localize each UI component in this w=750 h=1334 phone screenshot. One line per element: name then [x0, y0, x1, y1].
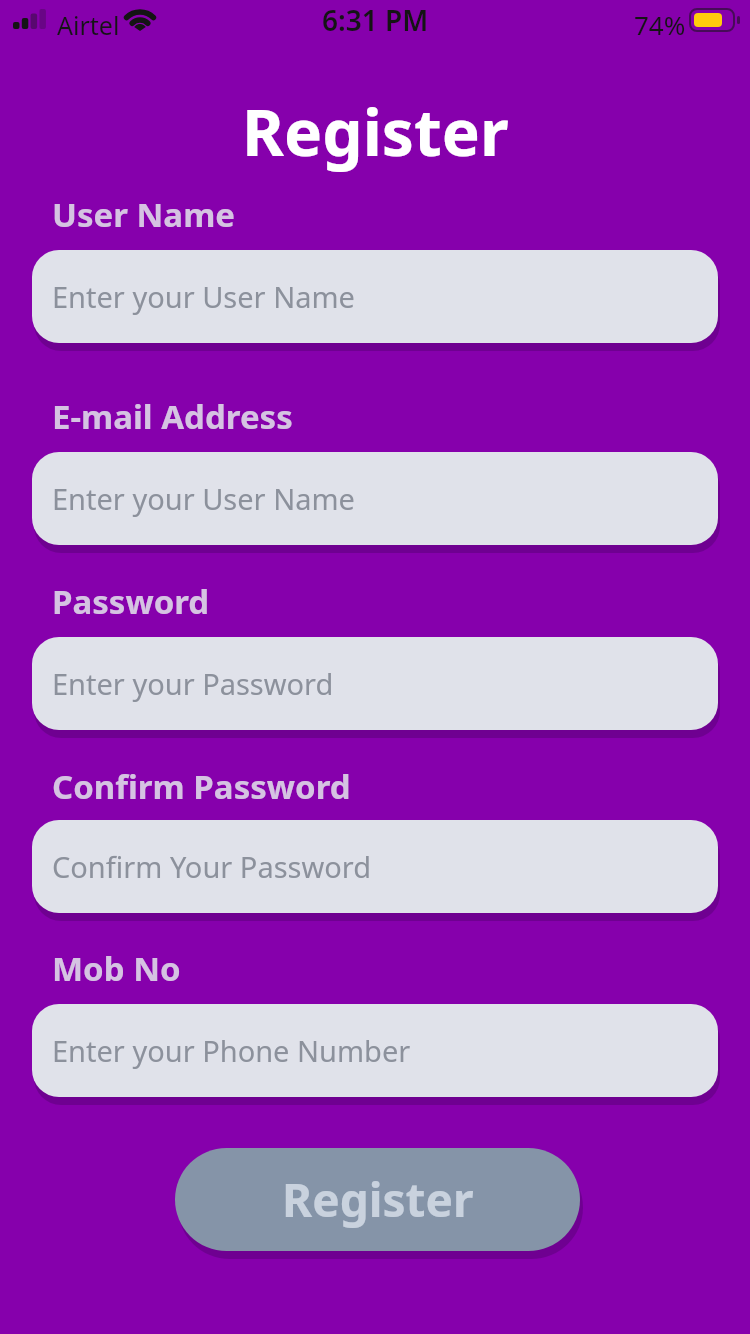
staticText: Enter your Password	[52, 664, 334, 703]
staticText: Password	[52, 579, 210, 624]
staticText: 6:31 PM	[322, 1, 429, 39]
staticText: Register	[242, 88, 509, 175]
button[interactable]: Enter your Phone Number	[32, 1004, 718, 1097]
staticText: Airtel	[57, 8, 120, 42]
button[interactable]: Enter your Password	[32, 637, 718, 730]
button[interactable]: Confirm Your Password	[32, 820, 718, 913]
staticText: E-mail Address	[52, 394, 293, 439]
staticText: Register	[282, 1168, 474, 1231]
staticText: Confirm Password	[52, 764, 351, 809]
staticText: Enter your Phone Number	[52, 1031, 411, 1070]
button[interactable]: Register	[175, 1148, 580, 1251]
staticText: Mob No	[52, 946, 181, 991]
staticText: Confirm Your Password	[52, 847, 372, 886]
staticText: User Name	[52, 192, 236, 237]
button[interactable]: Enter your User Name	[32, 452, 718, 545]
staticText: Enter your User Name	[52, 479, 355, 518]
staticText: 74%	[634, 7, 686, 42]
staticText: Enter your User Name	[52, 277, 355, 316]
button[interactable]: Enter your User Name	[32, 250, 718, 343]
